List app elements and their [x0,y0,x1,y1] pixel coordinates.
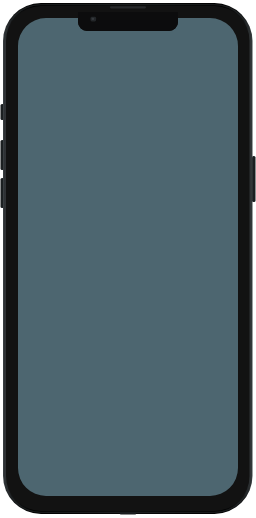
button[interactable]: Phone device mockup [0,0,256,518]
